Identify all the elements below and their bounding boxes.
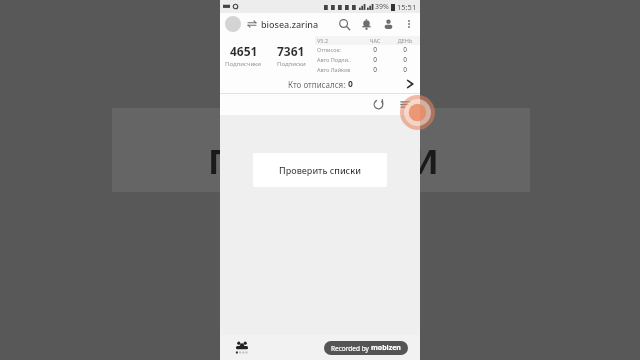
staticText: 39% bbox=[375, 2, 389, 12]
staticText: 0 bbox=[392, 55, 418, 64]
button[interactable]: Search bbox=[338, 18, 351, 31]
staticText: 0 bbox=[362, 65, 388, 74]
button[interactable]: 7361 bbox=[267, 43, 315, 68]
button[interactable]: Profile avatar bbox=[225, 16, 241, 32]
staticText: Авто Лайков bbox=[317, 66, 358, 73]
staticText: 7361 bbox=[277, 43, 305, 59]
staticText: 0 bbox=[392, 45, 418, 54]
staticText: 15:51 bbox=[397, 2, 417, 12]
staticText: Recorded by bbox=[331, 344, 371, 353]
staticText: V5.2 bbox=[317, 37, 358, 44]
staticText: ЧАС bbox=[362, 37, 388, 44]
button[interactable]: 4651 bbox=[220, 43, 267, 68]
staticText: Кто отписался: bbox=[288, 79, 348, 90]
staticText: Авто Подпи.. bbox=[317, 56, 358, 63]
staticText: И bbox=[412, 138, 439, 184]
staticText: 4651 bbox=[230, 43, 258, 59]
staticText: 0 bbox=[348, 78, 353, 90]
staticText: 0 bbox=[362, 45, 388, 54]
staticText: Отписок: bbox=[317, 46, 358, 53]
staticText: П bbox=[208, 138, 234, 184]
staticText: mobizen bbox=[371, 343, 401, 353]
other: Open unfollowers bbox=[404, 78, 416, 90]
staticText: Подписчики bbox=[225, 60, 262, 68]
staticText: Подписки bbox=[277, 60, 306, 68]
button[interactable]: Followers list bbox=[234, 340, 250, 356]
staticText: Проверить списки bbox=[279, 164, 361, 176]
staticText: ДЕНЬ bbox=[392, 37, 418, 44]
staticText: 0 bbox=[362, 55, 388, 64]
button[interactable]: Sort bbox=[399, 98, 412, 111]
button[interactable]: Followers bbox=[382, 18, 395, 31]
button[interactable]: Кто отписался: bbox=[220, 75, 420, 93]
button[interactable]: Refresh bbox=[372, 98, 385, 111]
button[interactable]: Проверить списки bbox=[253, 153, 387, 187]
staticText: 0 bbox=[392, 65, 418, 74]
button[interactable]: More options bbox=[403, 18, 415, 30]
staticText: biosea.zarina bbox=[261, 18, 319, 30]
button[interactable]: Notifications bbox=[360, 18, 373, 31]
button[interactable]: Switch account bbox=[247, 19, 257, 29]
